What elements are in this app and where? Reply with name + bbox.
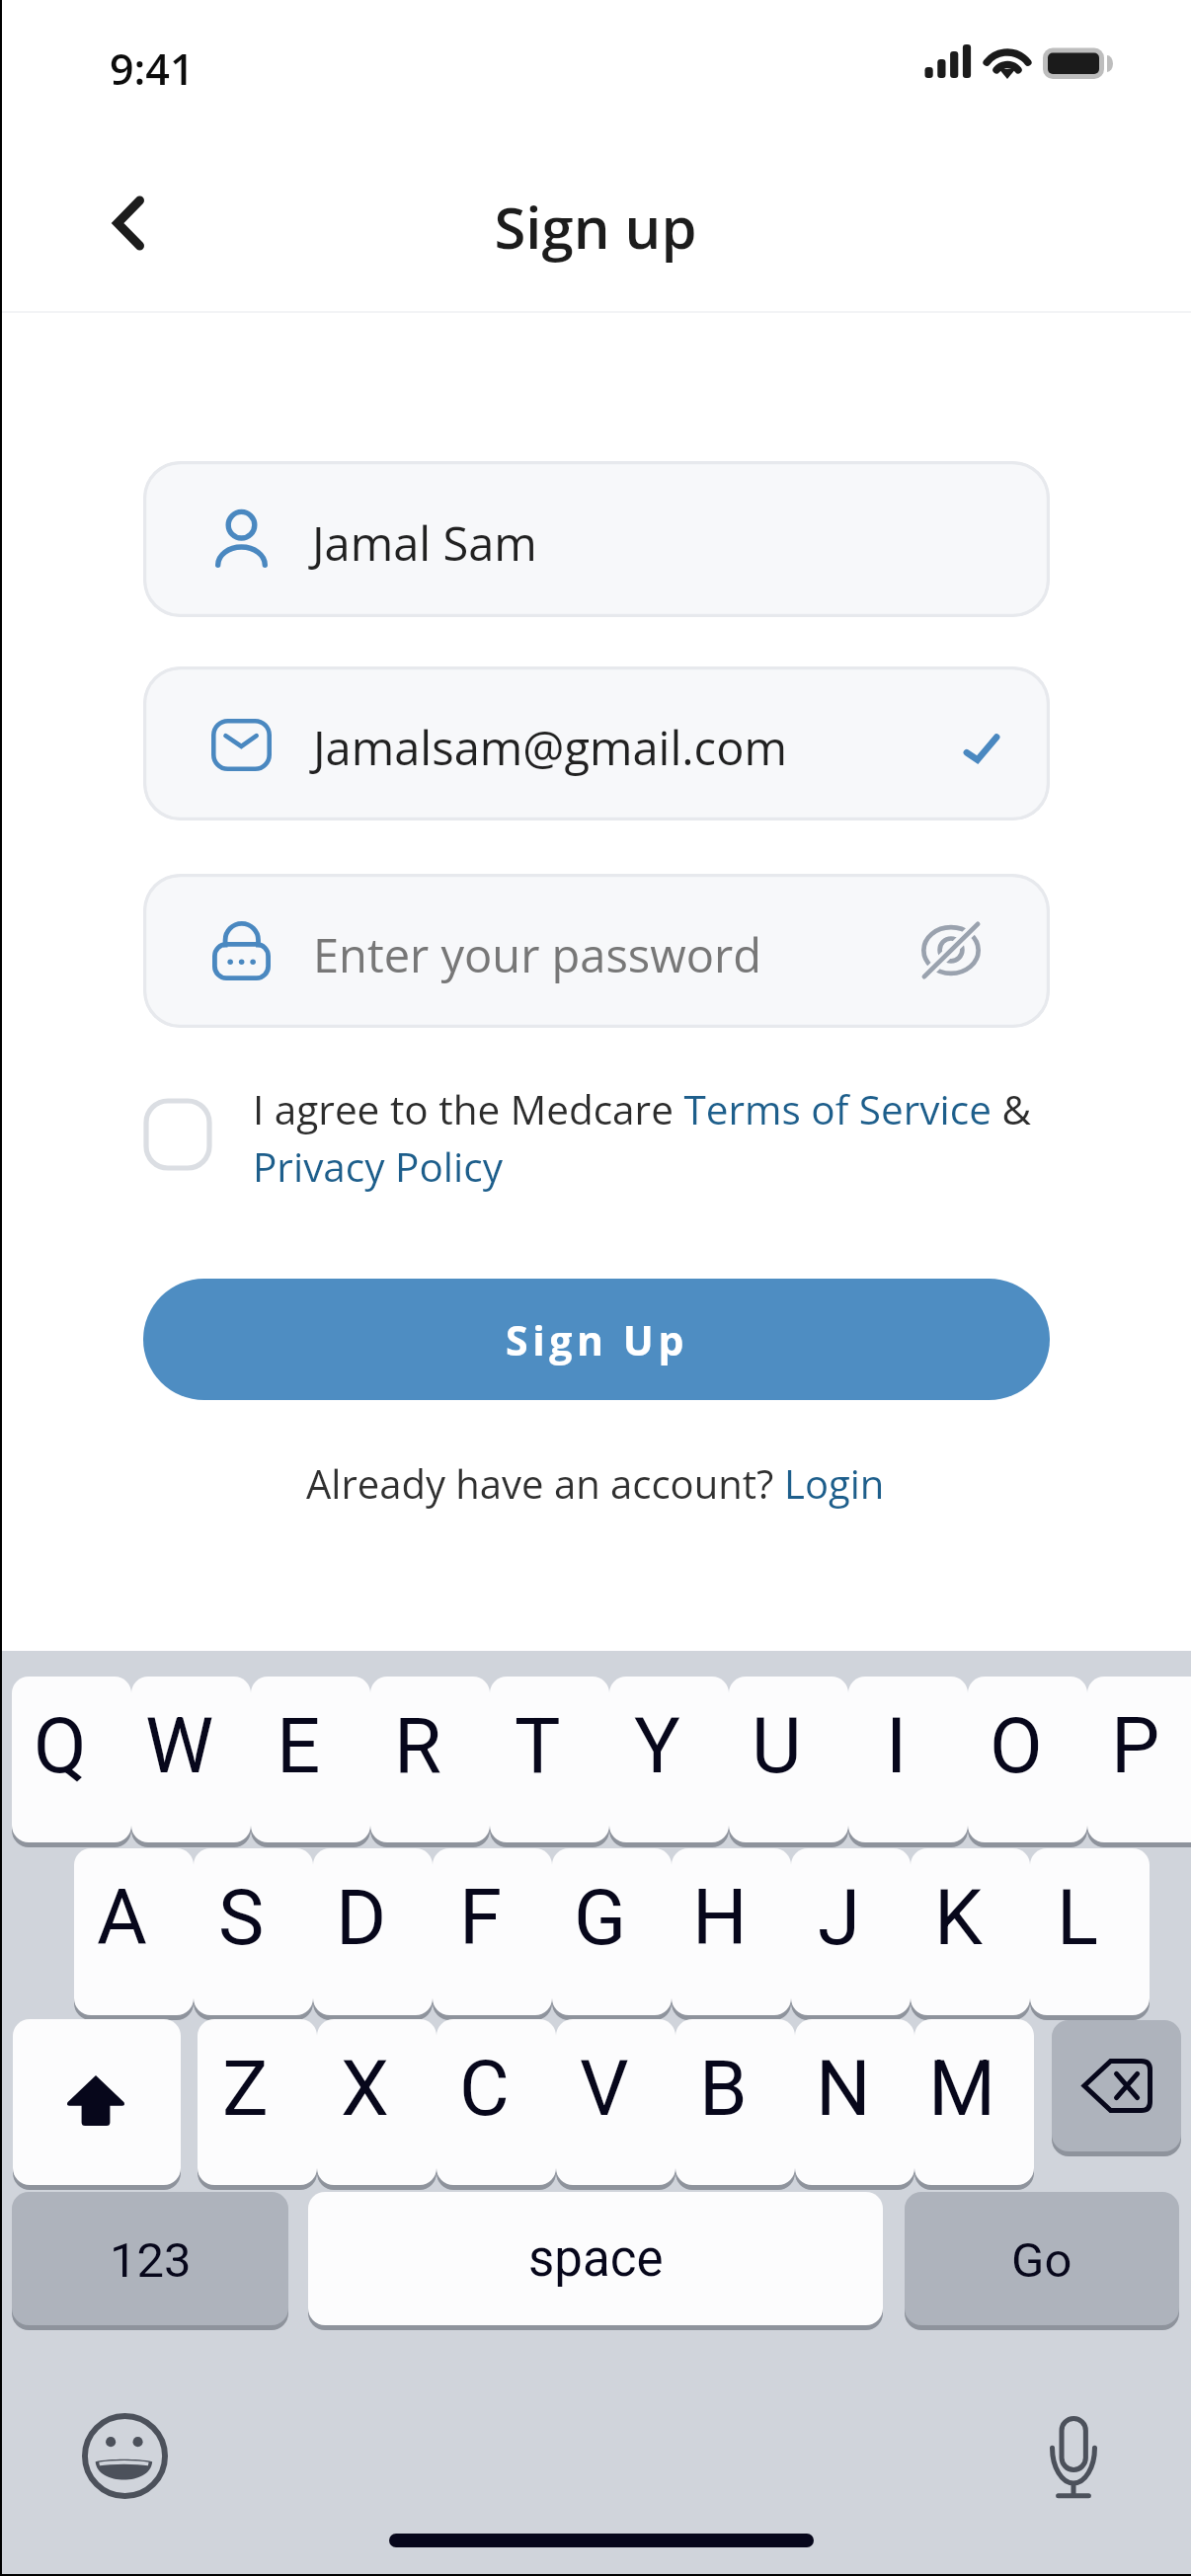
button[interactable]: Q bbox=[12, 1677, 131, 1842]
staticText: Z bbox=[222, 2044, 269, 2134]
button[interactable]: O bbox=[968, 1677, 1087, 1842]
staticText: Y bbox=[634, 1701, 680, 1791]
staticText: J bbox=[818, 1873, 861, 1963]
staticText: A bbox=[97, 1873, 147, 1963]
button[interactable]: Back bbox=[71, 174, 166, 269]
staticText: B bbox=[699, 2044, 748, 2134]
staticText: F bbox=[459, 1873, 503, 1963]
button[interactable]: C bbox=[437, 2019, 556, 2185]
button[interactable]: Jamalsam@gmail.com bbox=[143, 666, 1050, 820]
button[interactable]: Enter your password bbox=[143, 874, 1050, 1028]
staticText: X bbox=[341, 2044, 389, 2134]
button[interactable]: Dictation bbox=[1050, 2416, 1097, 2500]
staticText: T bbox=[515, 1701, 561, 1791]
button[interactable]: Emoji keyboard bbox=[82, 2413, 168, 2500]
button[interactable]: P bbox=[1087, 1677, 1191, 1842]
staticText: V bbox=[580, 2044, 629, 2134]
button[interactable]: Agree to terms and conditions bbox=[143, 1098, 212, 1171]
button[interactable] bbox=[13, 2019, 181, 2185]
staticText: I agree to the Medcare Terms of Service … bbox=[253, 1082, 1043, 1194]
staticText: E bbox=[277, 1701, 321, 1791]
staticText: P bbox=[1111, 1701, 1160, 1791]
button[interactable]: M bbox=[914, 2019, 1034, 2185]
button[interactable]: Sign Up bbox=[143, 1279, 1050, 1400]
button[interactable]: X bbox=[317, 2019, 437, 2185]
button[interactable]: Z bbox=[198, 2019, 317, 2185]
staticText: G bbox=[574, 1873, 627, 1963]
button[interactable]: D bbox=[313, 1848, 433, 2015]
staticText: Go bbox=[1011, 2232, 1072, 2289]
staticText: Login bbox=[784, 1456, 885, 1510]
staticText: C bbox=[459, 2044, 510, 2134]
staticText: 123 bbox=[110, 2232, 192, 2289]
staticText: I bbox=[886, 1701, 908, 1791]
staticText: Jamal Sam bbox=[312, 511, 537, 575]
staticText: K bbox=[934, 1873, 983, 1963]
button[interactable]: G bbox=[552, 1848, 672, 2015]
staticText: Q bbox=[34, 1701, 87, 1791]
button[interactable]: R bbox=[370, 1677, 490, 1842]
button[interactable]: J bbox=[791, 1848, 911, 2015]
button[interactable]: K bbox=[911, 1848, 1030, 2015]
staticText: L bbox=[1057, 1873, 1099, 1963]
staticText: R bbox=[394, 1701, 442, 1791]
button[interactable] bbox=[1052, 2020, 1181, 2151]
staticText: S bbox=[218, 1873, 265, 1963]
staticText: 9:41 bbox=[110, 39, 195, 98]
staticText: D bbox=[336, 1873, 387, 1963]
staticText: Enter your password bbox=[313, 923, 761, 986]
staticText: space bbox=[528, 2229, 664, 2289]
staticText: N bbox=[816, 2044, 871, 2134]
button[interactable]: N bbox=[795, 2019, 914, 2185]
button[interactable]: V bbox=[556, 2019, 675, 2185]
staticText: M bbox=[928, 2044, 996, 2134]
staticText: Sign up bbox=[0, 188, 1191, 266]
button[interactable]: Go bbox=[905, 2192, 1179, 2325]
button[interactable]: B bbox=[675, 2019, 795, 2185]
staticText: Sign Up bbox=[506, 1312, 688, 1367]
button[interactable]: S bbox=[194, 1848, 313, 2015]
button[interactable]: Show password bbox=[904, 903, 998, 998]
staticText: H bbox=[692, 1873, 748, 1963]
staticText: Jamalsam@gmail.com bbox=[313, 716, 787, 779]
staticText: U bbox=[752, 1701, 802, 1791]
button[interactable]: Jamal Sam bbox=[143, 461, 1050, 617]
button[interactable]: 123 bbox=[12, 2192, 288, 2325]
button[interactable]: H bbox=[672, 1848, 791, 2015]
button[interactable]: U bbox=[729, 1677, 848, 1842]
button[interactable]: E bbox=[251, 1677, 370, 1842]
button[interactable]: L bbox=[1030, 1848, 1150, 2015]
button[interactable]: A bbox=[74, 1848, 194, 2015]
button[interactable]: T bbox=[490, 1677, 609, 1842]
button[interactable]: Y bbox=[609, 1677, 729, 1842]
button[interactable]: space bbox=[308, 2192, 883, 2325]
button[interactable]: W bbox=[131, 1677, 251, 1842]
staticText: W bbox=[145, 1701, 214, 1791]
button[interactable]: F bbox=[433, 1848, 552, 2015]
staticText: Already have an account? bbox=[306, 1456, 784, 1510]
staticText: O bbox=[990, 1701, 1043, 1791]
button[interactable]: I bbox=[848, 1677, 968, 1842]
button[interactable]: Already have an account? bbox=[306, 1456, 885, 1510]
